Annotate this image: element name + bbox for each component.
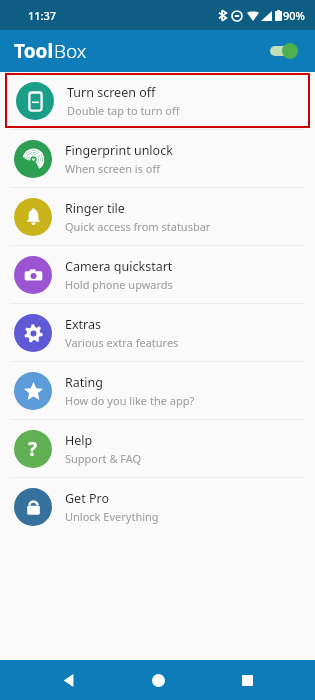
staticText: Fingerprint unlock [65,142,173,159]
staticText: Quick access from statusbar [65,219,211,234]
staticText: Hold phone upwards [65,277,173,292]
staticText: Rating [65,374,103,391]
button[interactable]: Rating [0,362,315,419]
staticText: Various extra features [65,335,179,350]
button[interactable]: ? [0,420,315,477]
staticText: Box [54,38,87,64]
button[interactable]: Extras [0,304,315,361]
staticText: ? [28,436,38,462]
button[interactable]: Turn screen off [7,75,308,126]
button[interactable]: Home [136,660,180,700]
staticText: Unlock Everything [65,509,159,524]
button[interactable]: Get Pro [0,478,315,535]
staticText: Turn screen off [67,84,156,101]
staticText: Support & FAQ [65,451,142,466]
button[interactable]: Back [46,660,90,700]
staticText: Camera quickstart [65,258,173,275]
button[interactable]: Fingerprint unlock [0,130,315,187]
staticText: How do you like the app? [65,393,195,408]
button[interactable]: Ringer tile [0,188,315,245]
staticText: Tool [14,38,54,64]
button[interactable]: Recents [225,660,269,700]
staticText: Ringer tile [65,200,125,217]
staticText: Double tap to turn off [67,103,180,118]
staticText: Get Pro [65,490,109,507]
staticText: Help [65,432,93,449]
button[interactable]: Camera quickstart [0,246,315,303]
button[interactable]: Master toggle [267,38,305,64]
staticText: When screen is off [65,161,161,176]
staticText: 11:37 [28,8,57,23]
staticText: 90% [283,8,305,23]
staticText: Extras [65,316,101,333]
